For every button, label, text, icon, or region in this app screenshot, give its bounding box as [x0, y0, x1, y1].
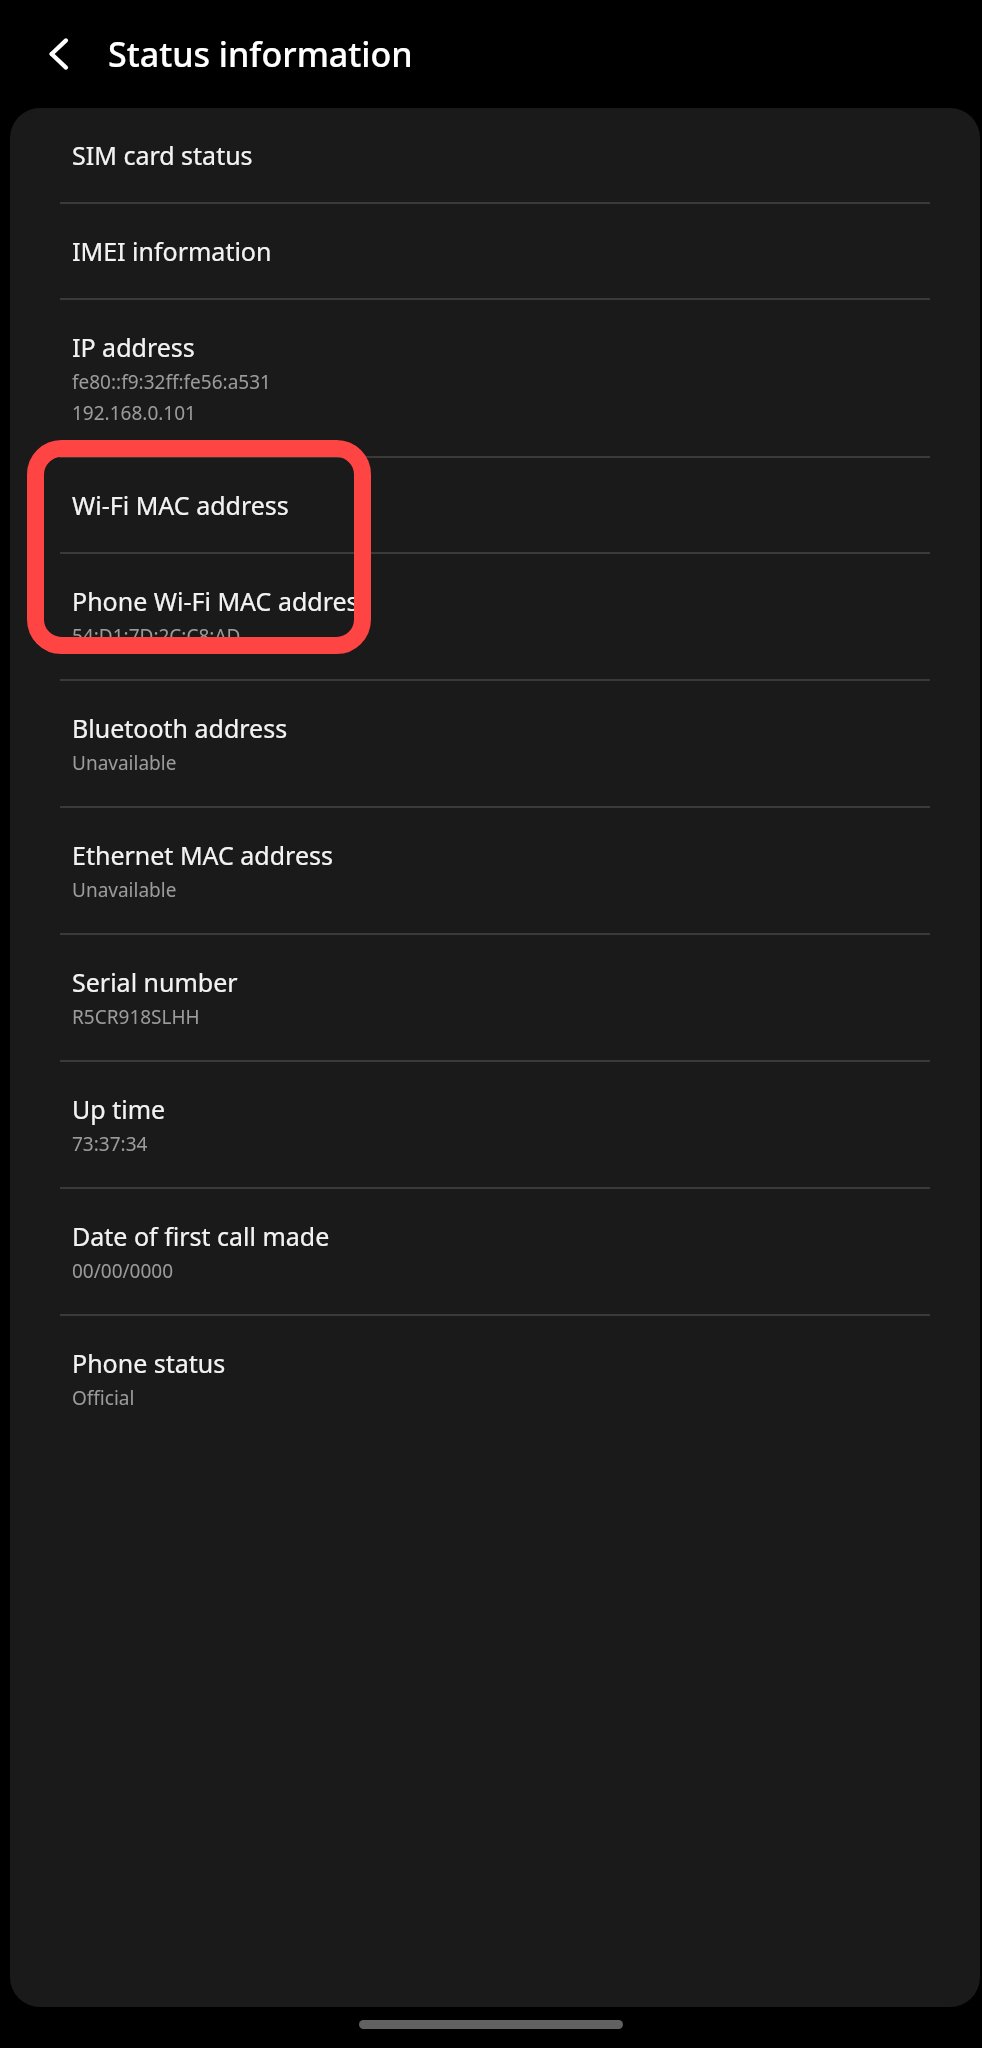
staticText: Phone Wi-Fi MAC address	[72, 584, 371, 618]
staticText: 54:D1:7D:2C:C8:AD	[72, 623, 241, 649]
staticText: Date of first call made	[72, 1219, 330, 1253]
button[interactable]: Up time	[10, 1062, 980, 1189]
staticText: Unavailable	[72, 877, 177, 903]
button[interactable]: Date of first call made	[10, 1189, 980, 1316]
staticText: 00/00/0000	[72, 1258, 174, 1284]
staticText: R5CR918SLHH	[72, 1004, 200, 1030]
staticText: IP address	[72, 330, 195, 364]
button[interactable]: IMEI information	[10, 204, 980, 300]
staticText: fe80::f9:32ff:fe56:a531	[72, 369, 271, 395]
staticText: Serial number	[72, 965, 238, 999]
button[interactable]: Back	[22, 14, 102, 94]
staticText: Unavailable	[72, 750, 177, 776]
button[interactable]: Serial number	[10, 935, 980, 1062]
staticText: Wi-Fi MAC address	[72, 488, 289, 522]
button[interactable]: Phone status	[10, 1316, 980, 1441]
button[interactable]: SIM card status	[10, 108, 980, 204]
button[interactable]: Phone Wi-Fi MAC address	[10, 554, 980, 681]
staticText: Up time	[72, 1092, 166, 1126]
button[interactable]: Bluetooth address	[10, 681, 980, 808]
staticText: Phone status	[72, 1346, 226, 1380]
staticText: IMEI information	[72, 234, 272, 268]
button[interactable]: IP address	[10, 300, 980, 458]
staticText: SIM card status	[72, 138, 253, 172]
staticText: Ethernet MAC address	[72, 838, 333, 872]
staticText: 192.168.0.101	[72, 400, 196, 426]
staticText: Bluetooth address	[72, 711, 288, 745]
staticText: Official	[72, 1385, 135, 1411]
button[interactable]: Ethernet MAC address	[10, 808, 980, 935]
button[interactable]: Wi-Fi MAC address	[10, 458, 980, 554]
staticText: Status information	[108, 31, 413, 77]
staticText: 73:37:34	[72, 1131, 148, 1157]
